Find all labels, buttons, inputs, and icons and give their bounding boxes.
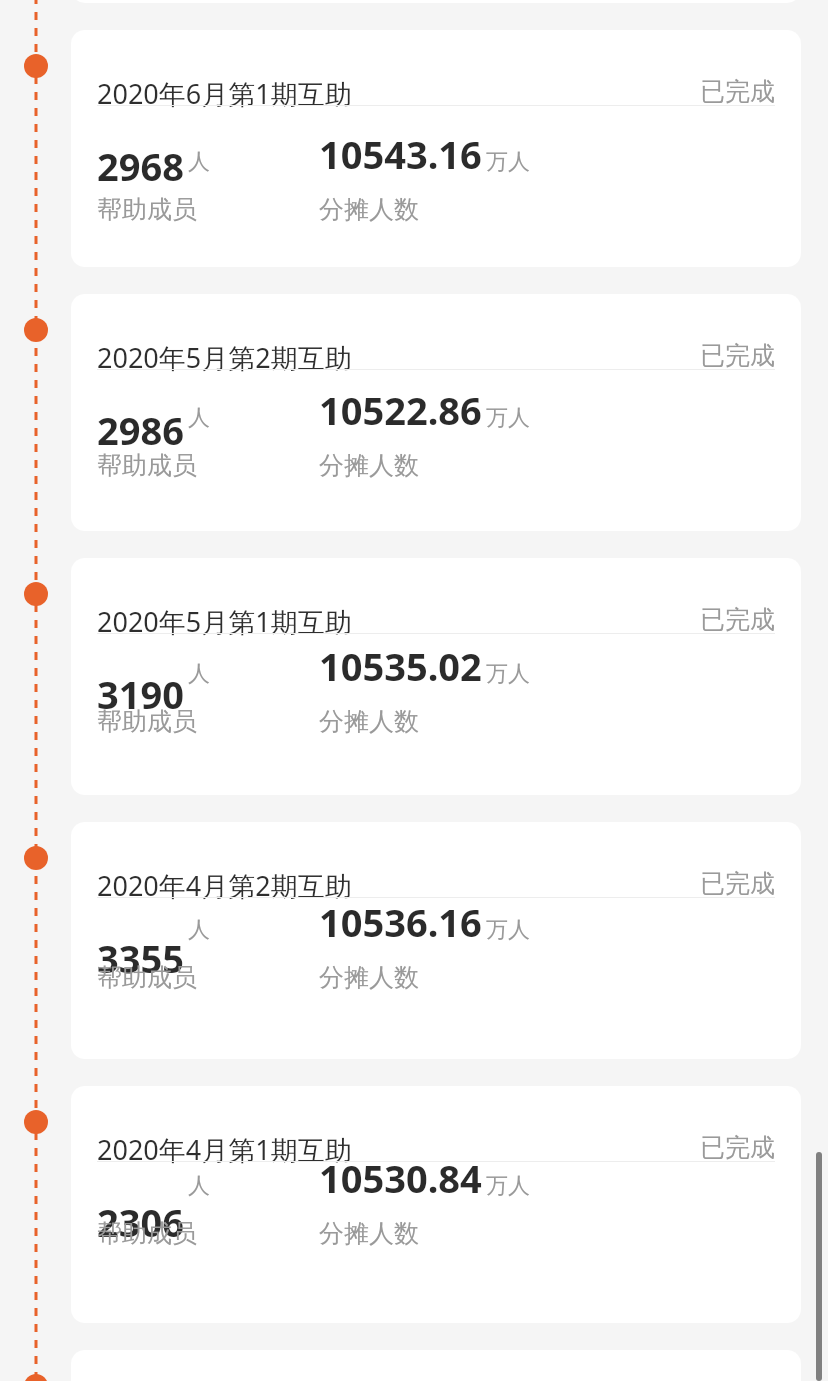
- staticText: 人: [188, 160, 210, 188]
- staticText: 万人: [486, 160, 530, 188]
- staticText: 帮助成员: [97, 470, 197, 501]
- staticText: 帮助成员: [97, 206, 197, 237]
- staticText: 万人: [486, 424, 530, 452]
- staticText: 已完成: [700, 76, 775, 107]
- staticText: 10530.84: [319, 1196, 482, 1248]
- staticText: 已完成: [700, 868, 775, 899]
- staticText: 2306: [97, 1196, 184, 1248]
- staticText: 人: [188, 1216, 210, 1244]
- button[interactable]: 2020年4月第2期互助: [71, 822, 801, 1059]
- button[interactable]: 2020年5月第2期互助: [71, 294, 801, 531]
- staticText: 人: [188, 952, 210, 980]
- staticText: 10535.02: [319, 668, 482, 720]
- staticText: 人: [188, 688, 210, 716]
- staticText: 10522.86: [319, 404, 482, 456]
- button[interactable]: 2020年6月第1期互助: [71, 30, 801, 267]
- staticText: 已完成: [700, 604, 775, 635]
- staticText: 已完成: [700, 1132, 775, 1163]
- staticText: 2020年5月第2期互助: [97, 339, 352, 376]
- staticText: 2968: [97, 140, 184, 192]
- staticText: 3190: [97, 668, 184, 720]
- staticText: 2986: [97, 404, 184, 456]
- staticText: 2020年4月第1期互助: [97, 1131, 352, 1168]
- staticText: 10536.16: [319, 932, 482, 984]
- staticText: 2020年4月第2期互助: [97, 867, 352, 904]
- button[interactable]: 2020年5月第1期互助: [71, 558, 801, 795]
- staticText: 分摊人数: [319, 470, 419, 501]
- staticText: 10543.16: [319, 140, 482, 192]
- staticText: 分摊人数: [319, 206, 419, 237]
- staticText: 2020年5月第1期互助: [97, 603, 352, 640]
- staticText: 人: [188, 424, 210, 452]
- staticText: 2020年6月第1期互助: [97, 75, 352, 112]
- button[interactable]: 2020年4月第1期互助: [71, 1086, 801, 1323]
- staticText: 已完成: [700, 340, 775, 371]
- staticText: 3355: [97, 932, 184, 984]
